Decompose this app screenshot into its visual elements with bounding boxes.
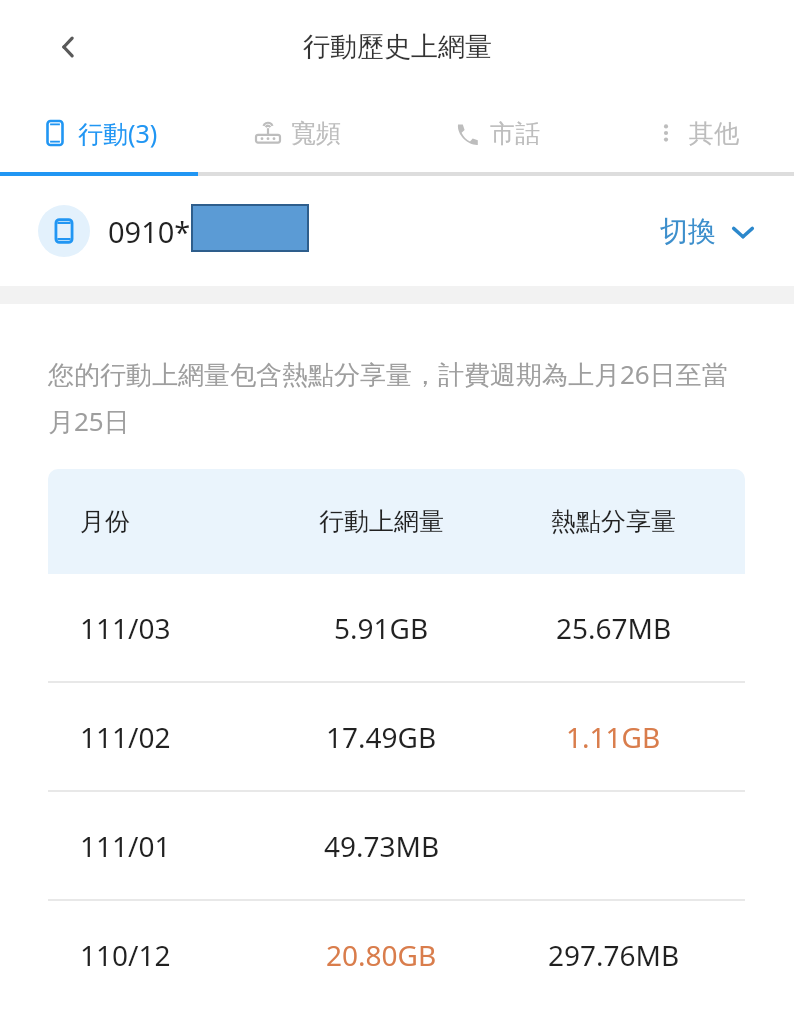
staticText: 行動歷史上網量: [303, 30, 492, 64]
staticText: 111/01: [80, 827, 171, 865]
staticText: 1.11GB: [566, 718, 661, 756]
staticText: 20.80GB: [326, 936, 437, 974]
button[interactable]: 其他: [595, 94, 794, 172]
staticText: 熱點分享量: [551, 506, 676, 537]
button[interactable]: 111/03: [48, 574, 745, 681]
staticText: 行動(3): [78, 116, 158, 150]
staticText: 其他: [689, 118, 739, 149]
button[interactable]: 111/01: [48, 792, 745, 899]
staticText: 行動上網量: [319, 506, 444, 537]
button[interactable]: 110/12: [48, 901, 745, 1008]
button[interactable]: 111/02: [48, 683, 745, 790]
button[interactable]: 寬頻: [198, 94, 396, 172]
staticText: 0910*: [108, 212, 191, 251]
staticText: 5.91GB: [334, 609, 429, 647]
staticText: 25.67MB: [556, 609, 672, 647]
staticText: 17.49GB: [326, 718, 437, 756]
button[interactable]: 市話: [396, 94, 595, 172]
button[interactable]: 0910*: [0, 176, 794, 286]
button[interactable]: Back: [44, 23, 92, 71]
staticText: 切換: [660, 214, 716, 249]
staticText: 297.76MB: [548, 936, 680, 974]
button[interactable]: 行動(3): [0, 94, 198, 172]
staticText: 月份: [80, 506, 130, 537]
staticText: 49.73MB: [324, 827, 440, 865]
staticText: 寬頻: [291, 118, 341, 149]
staticText: 您的行動上網量包含熱點分享量，計費週期為上月26日至當月25日: [48, 356, 744, 439]
staticText: 111/03: [80, 609, 171, 647]
staticText: 110/12: [80, 936, 171, 974]
staticText: 111/02: [80, 718, 171, 756]
staticText: 市話: [490, 118, 540, 149]
